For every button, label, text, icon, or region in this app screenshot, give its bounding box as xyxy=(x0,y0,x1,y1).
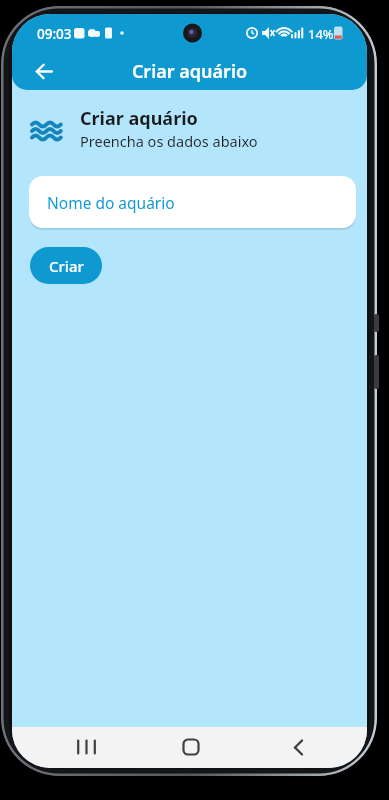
staticText: Criar xyxy=(49,256,84,276)
button[interactable] xyxy=(173,733,209,761)
staticText: 14% xyxy=(308,25,334,43)
button[interactable] xyxy=(280,733,316,761)
button[interactable]: Nome do aquário xyxy=(29,176,356,228)
staticText: 09:03 xyxy=(37,25,72,43)
button[interactable] xyxy=(68,733,104,761)
staticText: Criar aquário xyxy=(12,59,367,84)
staticText: Preencha os dados abaixo xyxy=(80,131,258,151)
button[interactable] xyxy=(26,58,62,84)
staticText: Criar aquário xyxy=(80,106,198,131)
staticText: Nome do aquário xyxy=(47,192,175,213)
button[interactable]: Criar xyxy=(30,247,102,284)
